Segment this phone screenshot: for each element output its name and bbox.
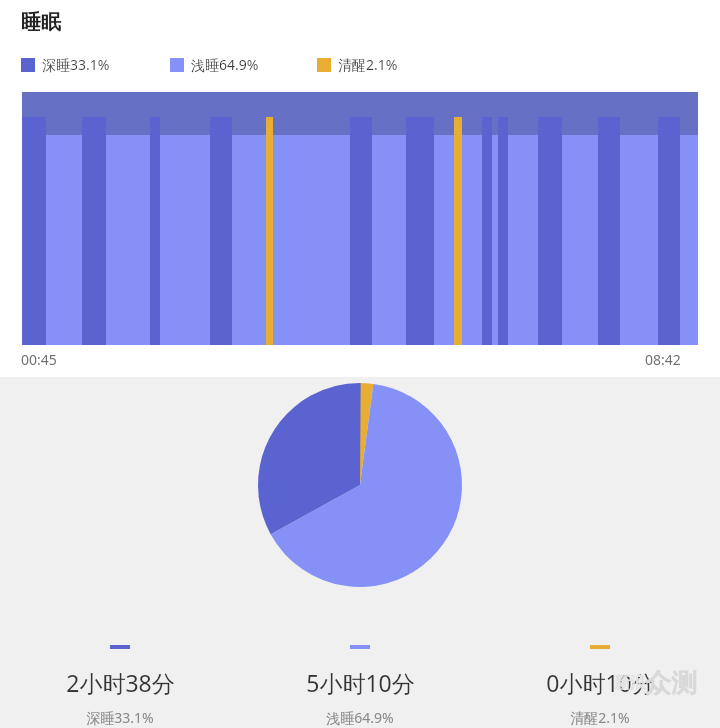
- button[interactable]: 清醒2.1%: [317, 55, 398, 74]
- button[interactable]: 0小时10分: [480, 645, 720, 727]
- staticText: 5小时10分: [306, 667, 415, 698]
- button[interactable]: 5小时10分: [240, 645, 480, 727]
- button[interactable]: Sleep stage chart: [22, 92, 698, 345]
- button[interactable]: 深睡33.1%: [21, 55, 110, 74]
- staticText: 新浪: [614, 673, 646, 693]
- staticText: 2小时38分: [66, 667, 175, 698]
- staticText: 睡眠: [21, 10, 61, 35]
- staticText: 清醒2.1%: [570, 708, 630, 727]
- button[interactable]: 2小时38分: [0, 645, 240, 727]
- staticText: 众测: [645, 667, 697, 700]
- staticText: 08:42: [645, 350, 681, 369]
- staticText: 深睡33.1%: [86, 708, 154, 727]
- staticText: 清醒2.1%: [338, 55, 398, 74]
- button[interactable]: 浅睡64.9%: [170, 55, 259, 74]
- staticText: 深睡33.1%: [42, 55, 110, 74]
- staticText: 00:45: [21, 350, 57, 369]
- staticText: 浅睡64.9%: [326, 708, 394, 727]
- staticText: 浅睡64.9%: [191, 55, 259, 74]
- staticText: 0小时10分: [546, 667, 655, 698]
- button[interactable]: Sleep composition pie chart: [258, 383, 462, 587]
